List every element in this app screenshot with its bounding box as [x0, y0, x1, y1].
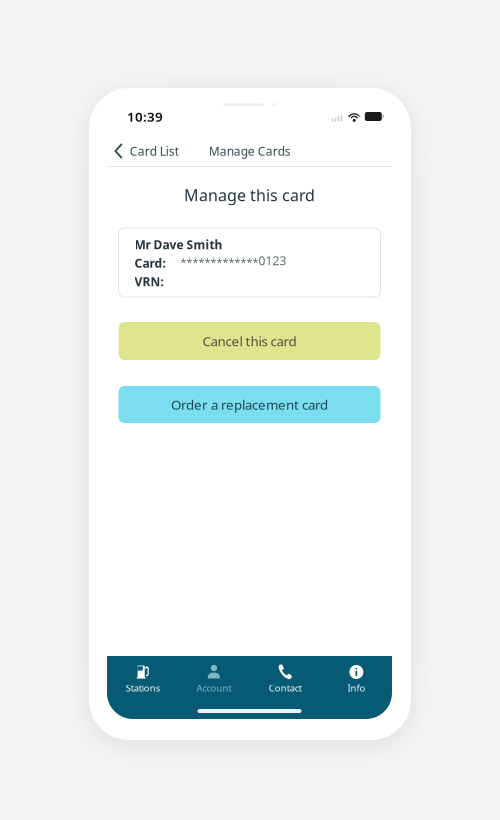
staticText: Contact — [269, 682, 302, 694]
button[interactable]: Manage Cards — [209, 139, 291, 163]
button[interactable]: Order a replacement card — [118, 386, 380, 423]
staticText: Manage Cards — [209, 143, 291, 159]
button[interactable]: Cancel this card — [118, 322, 380, 360]
staticText: Info — [347, 682, 365, 694]
button[interactable]: Card List — [114, 139, 179, 163]
staticText: 10:39 — [127, 108, 163, 125]
button[interactable]: Contact — [249, 665, 321, 705]
staticText: 0123 — [258, 253, 286, 268]
button[interactable]: Info — [321, 665, 392, 705]
button[interactable]: Account — [178, 665, 249, 705]
staticText: Card: — [134, 255, 165, 271]
staticText: Stations — [126, 682, 160, 694]
staticText: Cancel this card — [202, 332, 296, 350]
staticText: Manage this card — [184, 184, 315, 206]
staticText: Card List — [130, 143, 179, 159]
staticText: Order a replacement card — [171, 396, 328, 413]
staticText: VRN: — [134, 273, 163, 289]
staticText: ************* — [180, 255, 258, 269]
staticText: Mr Dave Smith — [134, 236, 222, 252]
staticText: Account — [196, 682, 231, 694]
button[interactable]: Stations — [107, 665, 178, 705]
